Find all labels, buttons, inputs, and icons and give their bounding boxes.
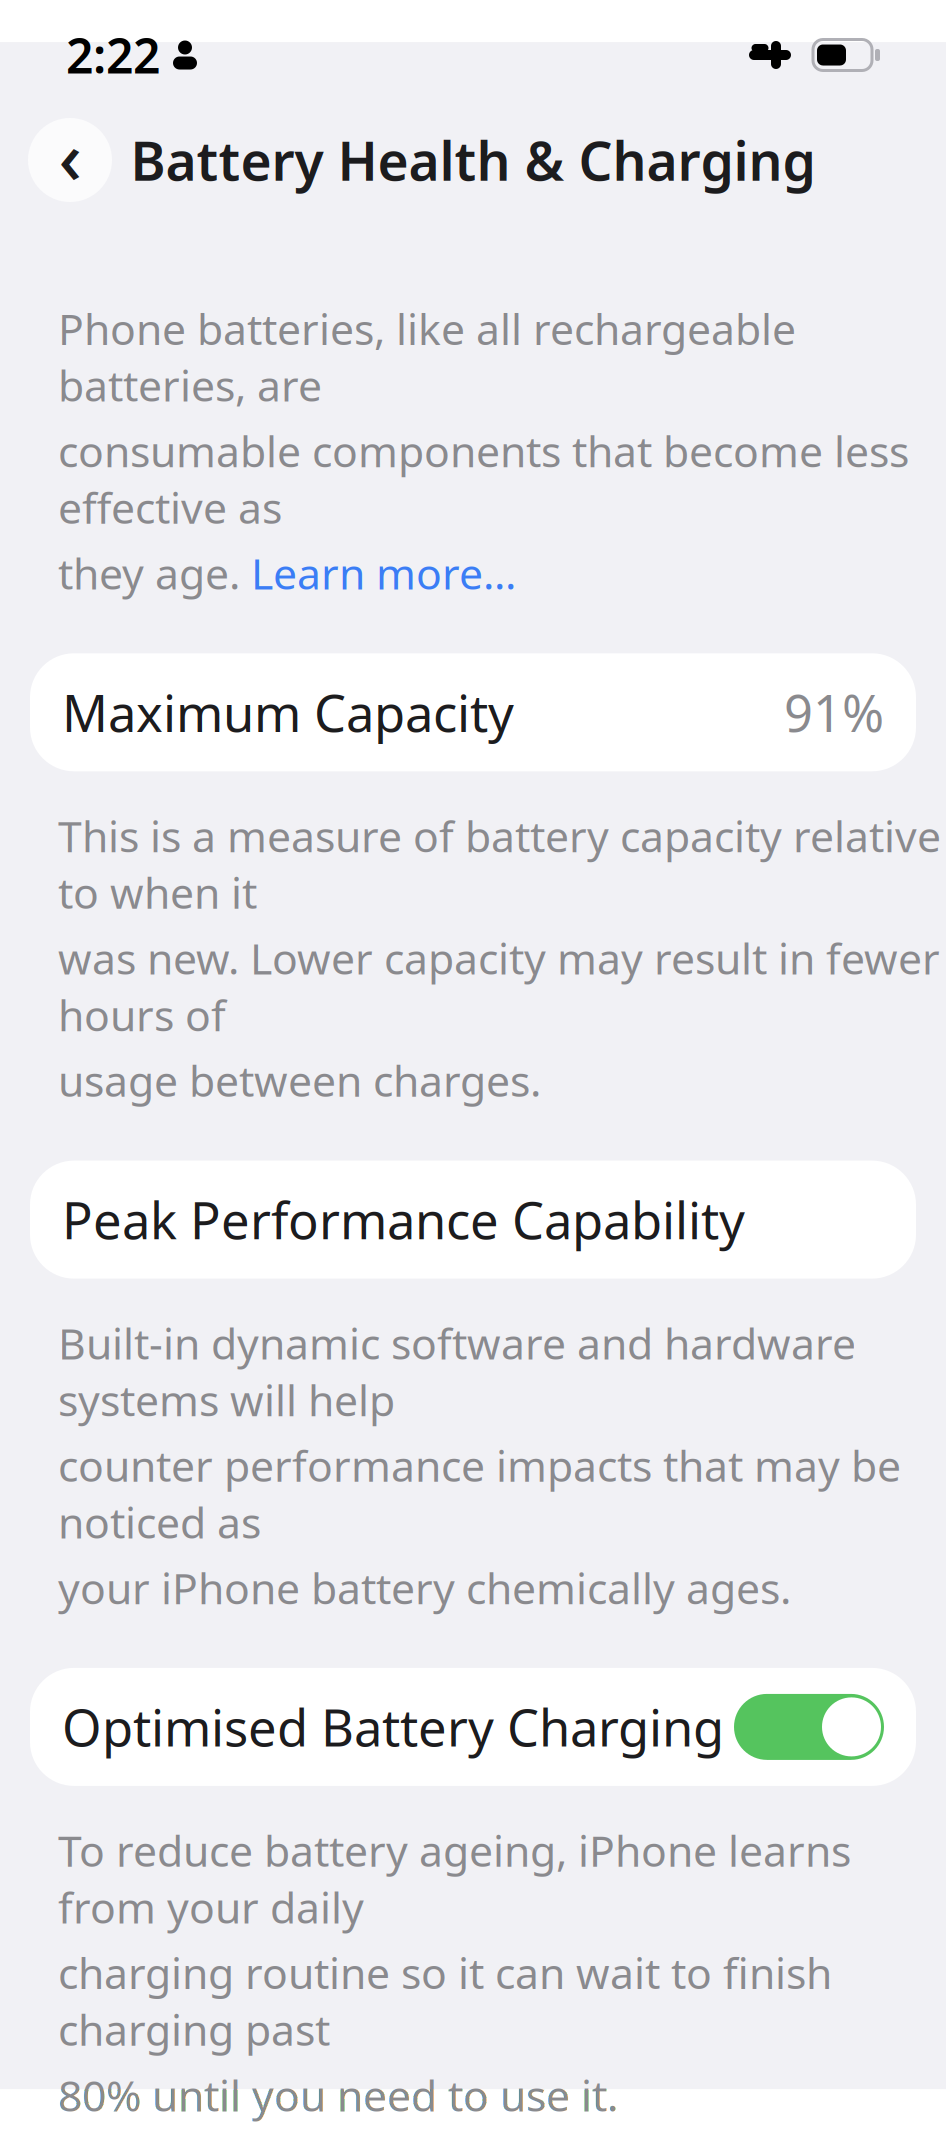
staticText: was new. Lower capacity may result in fe…: [58, 930, 940, 1043]
button[interactable]: Back: [28, 118, 112, 202]
staticText: usage between charges.: [58, 1052, 541, 1109]
staticText: Battery Health & Charging: [130, 125, 815, 195]
button[interactable]: Maximum Capacity: [30, 653, 916, 771]
staticText: ‹: [58, 108, 81, 204]
staticText: Learn more...: [251, 545, 516, 601]
staticText: Phone batteries, like all rechargeable b…: [58, 300, 796, 413]
staticText: This is a measure of battery capacity re…: [58, 807, 941, 921]
staticText: your iPhone battery chemically ages.: [58, 1559, 791, 1616]
button[interactable]: Peak Performance Capability: [30, 1161, 916, 1279]
staticText: Built-in dynamic software and hardware s…: [58, 1315, 856, 1428]
staticText: they age.: [58, 545, 251, 601]
staticText: Optimised Battery Charging: [62, 1693, 724, 1761]
staticText: 2:22: [66, 23, 160, 87]
staticText: 80% until you need to use it.: [58, 2066, 618, 2123]
button[interactable]: Learn more...: [251, 545, 516, 601]
button[interactable]: Optimised Battery Charging: [30, 1668, 916, 1786]
staticText: charging routine so it can wait to finis…: [58, 1944, 832, 2057]
staticText: Peak Performance Capability: [62, 1186, 745, 1253]
staticText: To reduce battery ageing, iPhone learns …: [58, 1822, 851, 1935]
staticText: Maximum Capacity: [62, 679, 514, 746]
staticText: 91%: [784, 679, 884, 746]
staticText: counter performance impacts that may be …: [58, 1437, 901, 1550]
staticText: consumable components that become less e…: [58, 422, 909, 536]
